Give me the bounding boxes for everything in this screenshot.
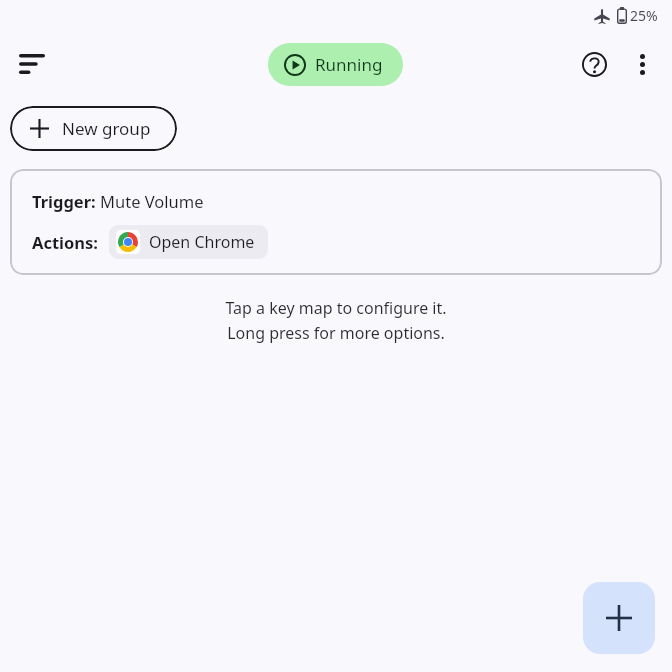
staticText: Long press for more options.	[227, 322, 445, 344]
staticText: New group	[62, 117, 151, 140]
button[interactable]: Trigger: Mute Volume	[10, 169, 662, 275]
button[interactable]: Open Chrome	[109, 225, 268, 259]
button[interactable]: Add key map	[583, 582, 655, 654]
button[interactable]: More options	[618, 40, 666, 88]
staticText: 25%	[630, 6, 658, 25]
button[interactable]: Sort	[8, 40, 56, 88]
staticText: Running	[315, 53, 383, 76]
button[interactable]: Running	[268, 43, 403, 86]
button[interactable]: New group	[10, 106, 177, 151]
staticText: Trigger: Mute Volume	[32, 190, 204, 212]
staticText: Tap a key map to configure it.	[225, 297, 447, 319]
staticText: Actions:	[32, 231, 98, 253]
staticText: Open Chrome	[149, 231, 255, 253]
button[interactable]: Help	[570, 40, 618, 88]
